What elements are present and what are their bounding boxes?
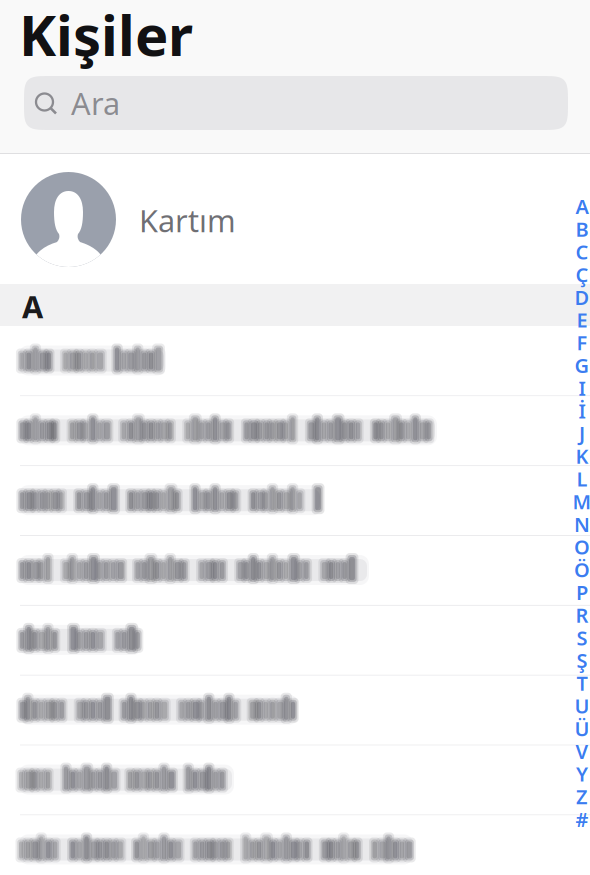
- button[interactable]: M: [568, 490, 590, 513]
- button[interactable]: U: [568, 694, 590, 717]
- staticText: Ara: [71, 83, 120, 123]
- staticText: S: [576, 624, 587, 651]
- button[interactable]: Ara: [24, 76, 568, 130]
- staticText: D: [574, 284, 589, 310]
- button[interactable]: D: [568, 286, 590, 308]
- staticText: C: [575, 238, 588, 265]
- staticText: A: [575, 193, 588, 220]
- button[interactable]: E: [568, 308, 590, 331]
- button[interactable]: Y: [568, 762, 590, 785]
- button[interactable]: Ç: [568, 263, 590, 286]
- staticText: K: [575, 443, 588, 469]
- staticText: J: [579, 420, 585, 447]
- staticText: U: [574, 692, 589, 719]
- staticText: #: [575, 806, 588, 833]
- staticText: Ö: [574, 556, 590, 583]
- staticText: Ş: [576, 647, 587, 674]
- staticText: Y: [576, 761, 588, 787]
- staticText: Z: [576, 783, 588, 810]
- staticText: G: [574, 352, 589, 379]
- button[interactable]: O: [568, 535, 590, 558]
- button[interactable]: T: [568, 672, 590, 694]
- staticText: Ç: [575, 261, 588, 288]
- button[interactable]: Z: [568, 785, 590, 808]
- button[interactable]: F: [568, 331, 590, 354]
- button[interactable]: R: [568, 604, 590, 626]
- button[interactable]: Kartım: [0, 154, 590, 284]
- button[interactable]: P: [568, 581, 590, 604]
- button[interactable]: L: [568, 467, 590, 490]
- button[interactable]: [0, 676, 590, 746]
- staticText: M: [572, 488, 590, 515]
- button[interactable]: Ş: [568, 649, 590, 672]
- button[interactable]: Ö: [568, 558, 590, 581]
- button[interactable]: [0, 606, 590, 676]
- staticText: N: [574, 511, 590, 537]
- button[interactable]: [0, 326, 590, 396]
- staticText: O: [574, 534, 590, 560]
- button[interactable]: J: [568, 422, 590, 445]
- button[interactable]: [0, 536, 590, 606]
- button[interactable]: C: [568, 240, 590, 263]
- button[interactable]: I: [568, 377, 590, 399]
- button[interactable]: B: [568, 218, 590, 240]
- button[interactable]: G: [568, 354, 590, 377]
- button[interactable]: V: [568, 740, 590, 762]
- staticText: V: [575, 738, 588, 764]
- button[interactable]: K: [568, 445, 590, 467]
- button[interactable]: Ü: [568, 717, 590, 740]
- button[interactable]: S: [568, 626, 590, 649]
- staticText: B: [575, 216, 588, 242]
- button[interactable]: #: [568, 808, 590, 831]
- staticText: F: [576, 329, 587, 356]
- button[interactable]: N: [568, 513, 590, 535]
- staticText: Ü: [574, 715, 589, 742]
- staticText: Kartım: [139, 200, 236, 241]
- staticText: L: [576, 465, 587, 492]
- staticText: I: [578, 375, 585, 401]
- button[interactable]: A: [568, 195, 590, 218]
- button[interactable]: [0, 815, 590, 875]
- button[interactable]: [0, 746, 590, 815]
- staticText: R: [575, 602, 588, 628]
- staticText: E: [576, 307, 587, 333]
- staticText: Kişiler: [19, 0, 193, 71]
- button[interactable]: İ: [568, 399, 590, 422]
- staticText: İ: [578, 397, 585, 424]
- staticText: P: [576, 579, 588, 606]
- staticText: T: [576, 670, 587, 696]
- button[interactable]: [0, 396, 590, 466]
- button[interactable]: [0, 466, 590, 536]
- staticText: A: [22, 286, 43, 327]
